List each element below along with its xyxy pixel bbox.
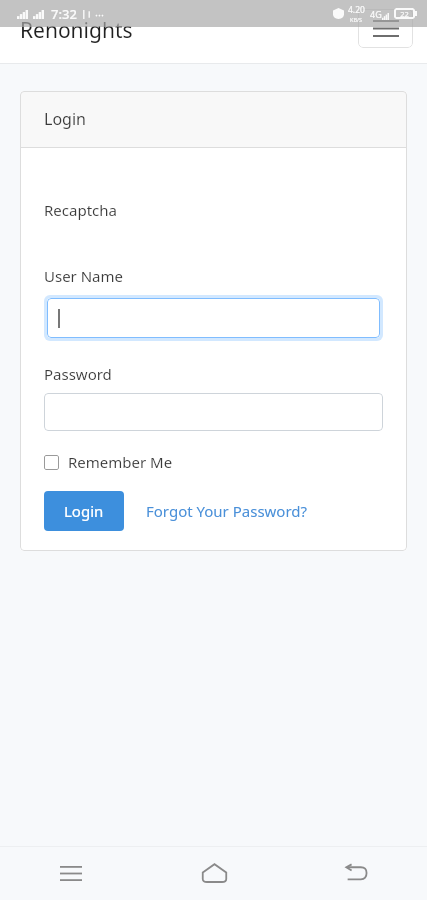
staticText: Password xyxy=(44,364,112,384)
staticText: Recaptcha xyxy=(44,200,117,220)
staticText: Forgot Your Password? xyxy=(146,501,308,521)
staticText: Remember Me xyxy=(68,452,173,472)
staticText: User Name xyxy=(44,266,124,286)
button[interactable]: Login xyxy=(44,491,124,531)
button[interactable]: Back xyxy=(332,849,380,897)
button[interactable]: Remember Me xyxy=(44,452,173,472)
staticText: KB/S xyxy=(350,16,363,23)
button[interactable] xyxy=(44,393,383,431)
button[interactable] xyxy=(47,298,380,338)
staticText: Login xyxy=(44,108,86,130)
staticText: 7:32 xyxy=(51,5,77,23)
staticText: ··· xyxy=(95,7,104,22)
button[interactable]: Recent apps xyxy=(47,849,95,897)
button[interactable]: Home xyxy=(190,849,238,897)
button[interactable]: Open navigation menu xyxy=(358,9,413,48)
staticText: 22 xyxy=(400,9,409,19)
staticText: Renonights xyxy=(20,16,133,45)
staticText: 4.20 xyxy=(348,4,365,16)
button[interactable]: Forgot Your Password? xyxy=(144,495,310,527)
staticText: 4G xyxy=(370,8,382,20)
staticText: Login xyxy=(64,501,104,521)
